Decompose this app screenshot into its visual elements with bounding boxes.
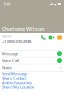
staticText: Share Contact (2, 75, 26, 81)
button[interactable]: Share Contact (2, 76, 64, 80)
staticText: 9:41 (3, 1, 10, 7)
button[interactable]: Voice Call (0, 57, 64, 64)
staticText: Notes (2, 65, 12, 70)
staticText: Charlotte Wilson (2, 25, 44, 32)
staticText: mobile (2, 35, 12, 38)
button[interactable]: Send Message (2, 72, 64, 76)
staticText: Message (2, 51, 18, 56)
button[interactable]: Notes (0, 64, 64, 71)
staticText: +1 (555) 010-2938 (2, 39, 31, 44)
button[interactable]: Add to Favourites (2, 80, 64, 85)
button[interactable]: Share My Location (2, 85, 64, 89)
staticText: Send Message (2, 71, 27, 76)
staticText: Share My Location (2, 84, 34, 90)
staticText: Add to Favourites (2, 80, 32, 85)
button[interactable]: Message (0, 50, 64, 57)
staticText: Voice Call (2, 58, 19, 63)
button[interactable]: mobile (0, 33, 64, 50)
